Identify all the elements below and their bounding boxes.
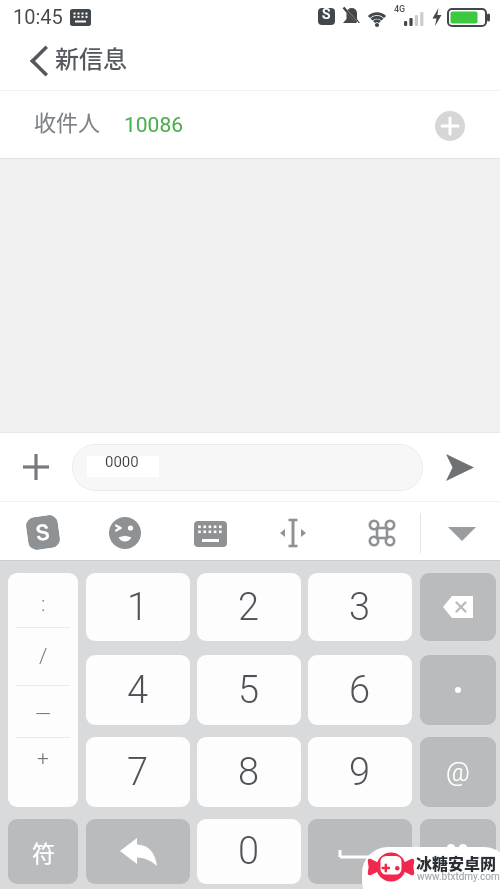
button[interactable]: — bbox=[8, 692, 78, 736]
staticText: 9 bbox=[349, 750, 371, 795]
staticText: S bbox=[34, 519, 52, 547]
button[interactable]: + bbox=[8, 736, 78, 780]
staticText: — bbox=[35, 702, 52, 727]
button[interactable] bbox=[16, 447, 56, 487]
staticText: 5 bbox=[238, 668, 260, 713]
staticText: 6 bbox=[349, 668, 371, 713]
button[interactable]: 8 bbox=[197, 737, 301, 807]
button[interactable] bbox=[420, 573, 496, 641]
staticText: : bbox=[41, 592, 46, 617]
staticText: 8 bbox=[238, 750, 260, 795]
button[interactable]: 0 bbox=[197, 819, 301, 884]
staticText: 2 bbox=[238, 585, 260, 630]
button[interactable] bbox=[444, 516, 480, 550]
staticText: 4 bbox=[127, 668, 149, 713]
staticText: @ bbox=[446, 757, 470, 787]
button[interactable] bbox=[308, 819, 412, 884]
staticText: S bbox=[322, 6, 331, 22]
button[interactable]: 符 bbox=[8, 819, 78, 884]
button[interactable]: S bbox=[24, 514, 62, 552]
button[interactable] bbox=[274, 514, 312, 552]
staticText: 4G bbox=[394, 4, 406, 15]
button[interactable] bbox=[435, 111, 465, 141]
staticText: 冰糖安卓网 bbox=[416, 851, 497, 874]
staticText: 1 bbox=[127, 585, 149, 630]
button[interactable]: 6 bbox=[308, 655, 412, 725]
button[interactable]: @ bbox=[420, 737, 496, 807]
staticText: 0 bbox=[238, 829, 260, 874]
button[interactable]: / bbox=[8, 634, 78, 678]
button[interactable] bbox=[436, 450, 484, 486]
staticText: 10:45 bbox=[13, 5, 63, 28]
button[interactable]: 3 bbox=[308, 573, 412, 641]
staticText: 收件人 bbox=[34, 105, 101, 137]
staticText: 新信息 bbox=[55, 40, 127, 75]
staticText: 10086 bbox=[124, 113, 184, 138]
staticText: 符 bbox=[32, 835, 55, 868]
button[interactable] bbox=[420, 655, 496, 725]
button[interactable]: 5 bbox=[197, 655, 301, 725]
button[interactable]: 4 bbox=[86, 655, 190, 725]
button[interactable]: 1 bbox=[86, 573, 190, 641]
button[interactable]: 7 bbox=[86, 737, 190, 807]
staticText: www.btxtdmy.com bbox=[417, 871, 500, 883]
button[interactable] bbox=[106, 514, 144, 552]
button[interactable] bbox=[363, 514, 401, 552]
button[interactable]: 新信息 bbox=[20, 40, 200, 85]
button[interactable] bbox=[192, 517, 230, 551]
staticText: + bbox=[37, 746, 49, 771]
button[interactable] bbox=[420, 819, 496, 884]
button[interactable]: : bbox=[8, 582, 78, 626]
button[interactable]: 2 bbox=[197, 573, 301, 641]
staticText: 3 bbox=[349, 585, 371, 630]
staticText: 7 bbox=[127, 750, 149, 795]
staticText: / bbox=[39, 644, 48, 669]
staticText: 0000 bbox=[105, 453, 139, 471]
button[interactable]: 0000 bbox=[72, 444, 423, 491]
button[interactable] bbox=[86, 819, 190, 884]
button[interactable]: 9 bbox=[308, 737, 412, 807]
